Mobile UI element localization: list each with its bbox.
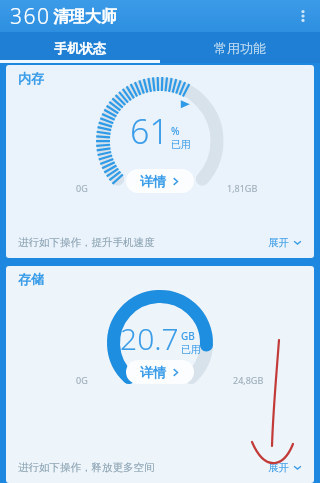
staticText: 进行如下操作，释放更多空间 — [18, 461, 155, 474]
staticText: 存储 — [18, 271, 44, 287]
staticText: % — [171, 124, 180, 138]
staticText: 1,81GB — [227, 182, 258, 194]
staticText: 0G — [76, 182, 88, 194]
button[interactable]: 进行如下操作，提升手机速度 — [6, 226, 314, 258]
button[interactable]: 手机状态 — [0, 32, 160, 63]
button[interactable]: More options — [286, 0, 320, 32]
staticText: 24,8GB — [233, 374, 264, 386]
staticText: 360 — [10, 2, 51, 31]
button[interactable]: 详情 — [126, 360, 194, 384]
button[interactable]: 详情 — [126, 169, 194, 193]
button[interactable]: 进行如下操作，释放更多空间 — [6, 451, 314, 483]
staticText: 61 — [130, 108, 169, 154]
button[interactable]: 常用功能 — [160, 32, 320, 63]
staticText: 已用 — [181, 343, 201, 356]
staticText: 已用 — [171, 138, 191, 151]
staticText: 详情 — [140, 364, 166, 380]
staticText: 内存 — [18, 70, 44, 86]
staticText: GB — [181, 329, 195, 343]
staticText: 清理大师 — [53, 7, 117, 27]
staticText: 详情 — [140, 173, 166, 189]
staticText: 展开 — [268, 236, 289, 249]
staticText: 手机状态 — [54, 40, 106, 56]
staticText: 进行如下操作，提升手机速度 — [18, 236, 155, 249]
staticText: 20.7 — [120, 318, 179, 359]
staticText: 0G — [76, 374, 88, 386]
staticText: 常用功能 — [214, 40, 266, 56]
staticText: 展开 — [268, 461, 289, 474]
